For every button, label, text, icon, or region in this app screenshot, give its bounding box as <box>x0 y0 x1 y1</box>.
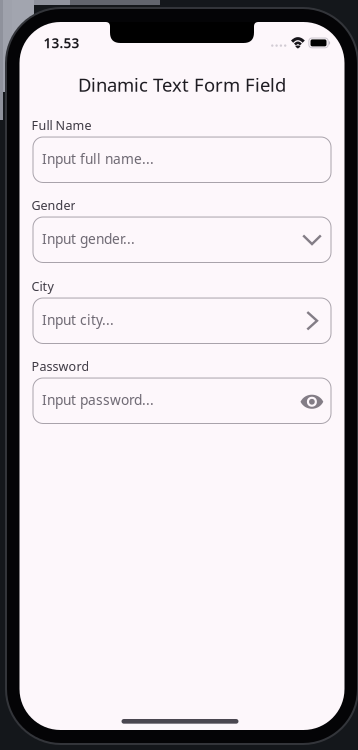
staticText: 13.53 <box>43 34 79 52</box>
staticText: Input city... <box>42 310 114 329</box>
staticText: Input full name... <box>42 149 154 168</box>
button[interactable]: Input password... <box>33 378 331 423</box>
staticText: Password <box>31 357 89 375</box>
button[interactable]: Input city... <box>33 298 331 343</box>
staticText: Input password... <box>42 390 154 409</box>
staticText: Dinamic Text Form Field <box>78 72 286 97</box>
staticText: Input gender... <box>42 229 135 248</box>
staticText: Gender <box>31 196 75 214</box>
button[interactable]: Input gender... <box>33 217 331 262</box>
staticText: City <box>31 277 53 295</box>
button[interactable]: Input full name... <box>33 137 331 182</box>
staticText: Full Name <box>31 116 91 134</box>
